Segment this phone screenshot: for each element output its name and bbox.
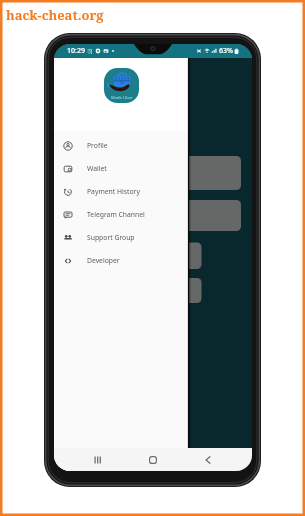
button[interactable]: Support Group <box>54 226 188 249</box>
staticText: Mudir Ubor <box>111 95 133 100</box>
button[interactable]: Payment History <box>54 180 188 203</box>
staticText: Payment History <box>87 187 140 196</box>
staticText: Telegram Channel <box>87 210 145 219</box>
staticText: Developer <box>87 256 120 265</box>
button[interactable]: Profile <box>54 134 188 157</box>
button[interactable]: Telegram Channel <box>54 203 188 226</box>
button[interactable]: Developer <box>54 249 188 272</box>
staticText: Wallet <box>87 164 107 173</box>
button[interactable]: Home <box>138 448 167 471</box>
staticText: Support Group <box>87 233 135 242</box>
staticText: 63% <box>219 46 233 56</box>
button[interactable]: Wallet <box>54 157 188 180</box>
button[interactable]: Recents <box>83 448 112 471</box>
staticText: hack-cheat.org <box>6 6 104 24</box>
staticText: Profile <box>87 141 108 150</box>
button[interactable]: Back <box>193 448 222 471</box>
staticText: 10:29 <box>67 46 85 56</box>
